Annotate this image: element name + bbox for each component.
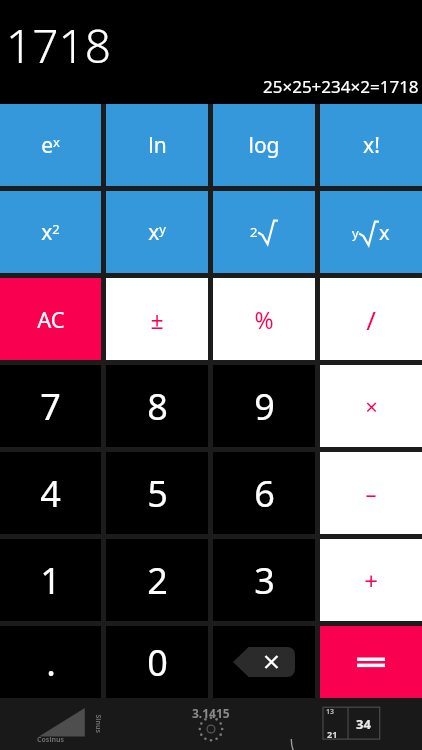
staticText: x2 — [41, 218, 60, 247]
staticText: . — [46, 638, 56, 687]
staticText: ln — [148, 131, 167, 160]
staticText: 2 — [147, 556, 168, 605]
button[interactable]: Constants — [140, 698, 281, 750]
button[interactable]: AC — [0, 278, 101, 360]
staticText: 6 — [254, 469, 275, 518]
staticText: Cosinus — [37, 735, 65, 745]
button[interactable]: 9 — [213, 365, 315, 447]
staticText: 4 — [40, 469, 61, 518]
staticText: 1718 — [6, 14, 112, 77]
staticText: ex — [41, 131, 60, 160]
staticText: 1 — [40, 556, 61, 605]
staticText: 7 — [40, 382, 61, 431]
staticText: 0 — [147, 638, 168, 687]
button[interactable]: 3 — [213, 539, 315, 621]
staticText: 21 — [327, 728, 338, 740]
button[interactable]: xy — [106, 191, 208, 273]
button[interactable]: ex — [0, 104, 101, 186]
button[interactable]: % — [213, 278, 315, 360]
staticText: 9 — [254, 382, 275, 431]
staticText: log — [248, 131, 280, 160]
button[interactable]: nth root — [320, 191, 422, 273]
staticText: 5 — [147, 469, 168, 518]
staticText: 34 — [356, 715, 371, 733]
button[interactable]: 4 — [0, 452, 101, 534]
staticText: 3.1415 — [192, 705, 230, 721]
button[interactable]: Sequences — [281, 698, 422, 750]
button[interactable]: square root — [213, 191, 315, 273]
button[interactable]: 6 — [213, 452, 315, 534]
button[interactable]: Trigonometry — [0, 698, 140, 750]
button[interactable]: 1 — [0, 539, 101, 621]
button[interactable]: Equals — [320, 626, 422, 698]
button[interactable]: . — [0, 626, 101, 698]
button[interactable]: / — [320, 278, 422, 360]
staticText: 13 — [326, 707, 335, 717]
staticText: y — [352, 224, 359, 242]
button[interactable]: 8 — [106, 365, 208, 447]
button[interactable]: 7 — [0, 365, 101, 447]
button[interactable]: x! — [320, 104, 422, 186]
staticText: × — [365, 391, 378, 421]
staticText: / — [366, 302, 376, 337]
staticText: 3 — [254, 556, 275, 605]
staticText: ± — [150, 304, 164, 335]
button[interactable]: log — [213, 104, 315, 186]
button[interactable]: 2 — [106, 539, 208, 621]
staticText: AC — [37, 304, 65, 334]
button[interactable]: x2 — [0, 191, 101, 273]
staticText: 2 — [250, 223, 258, 241]
staticText: x! — [363, 131, 380, 160]
staticText: Sinus — [92, 714, 102, 733]
staticText: 8 — [147, 382, 168, 431]
staticText: x — [379, 219, 390, 246]
button[interactable]: × — [320, 365, 422, 447]
button[interactable]: ± — [106, 278, 208, 360]
button[interactable]: ln — [106, 104, 208, 186]
staticText: – — [365, 478, 377, 508]
staticText: 25×25+234×2=1718 — [263, 75, 419, 98]
staticText: xy — [148, 218, 166, 247]
button[interactable]: 5 — [106, 452, 208, 534]
button[interactable]: Backspace — [213, 626, 315, 698]
button[interactable]: – — [320, 452, 422, 534]
staticText: + — [364, 564, 378, 597]
button[interactable]: 0 — [106, 626, 208, 698]
button[interactable]: + — [320, 539, 422, 621]
staticText: % — [254, 304, 274, 335]
